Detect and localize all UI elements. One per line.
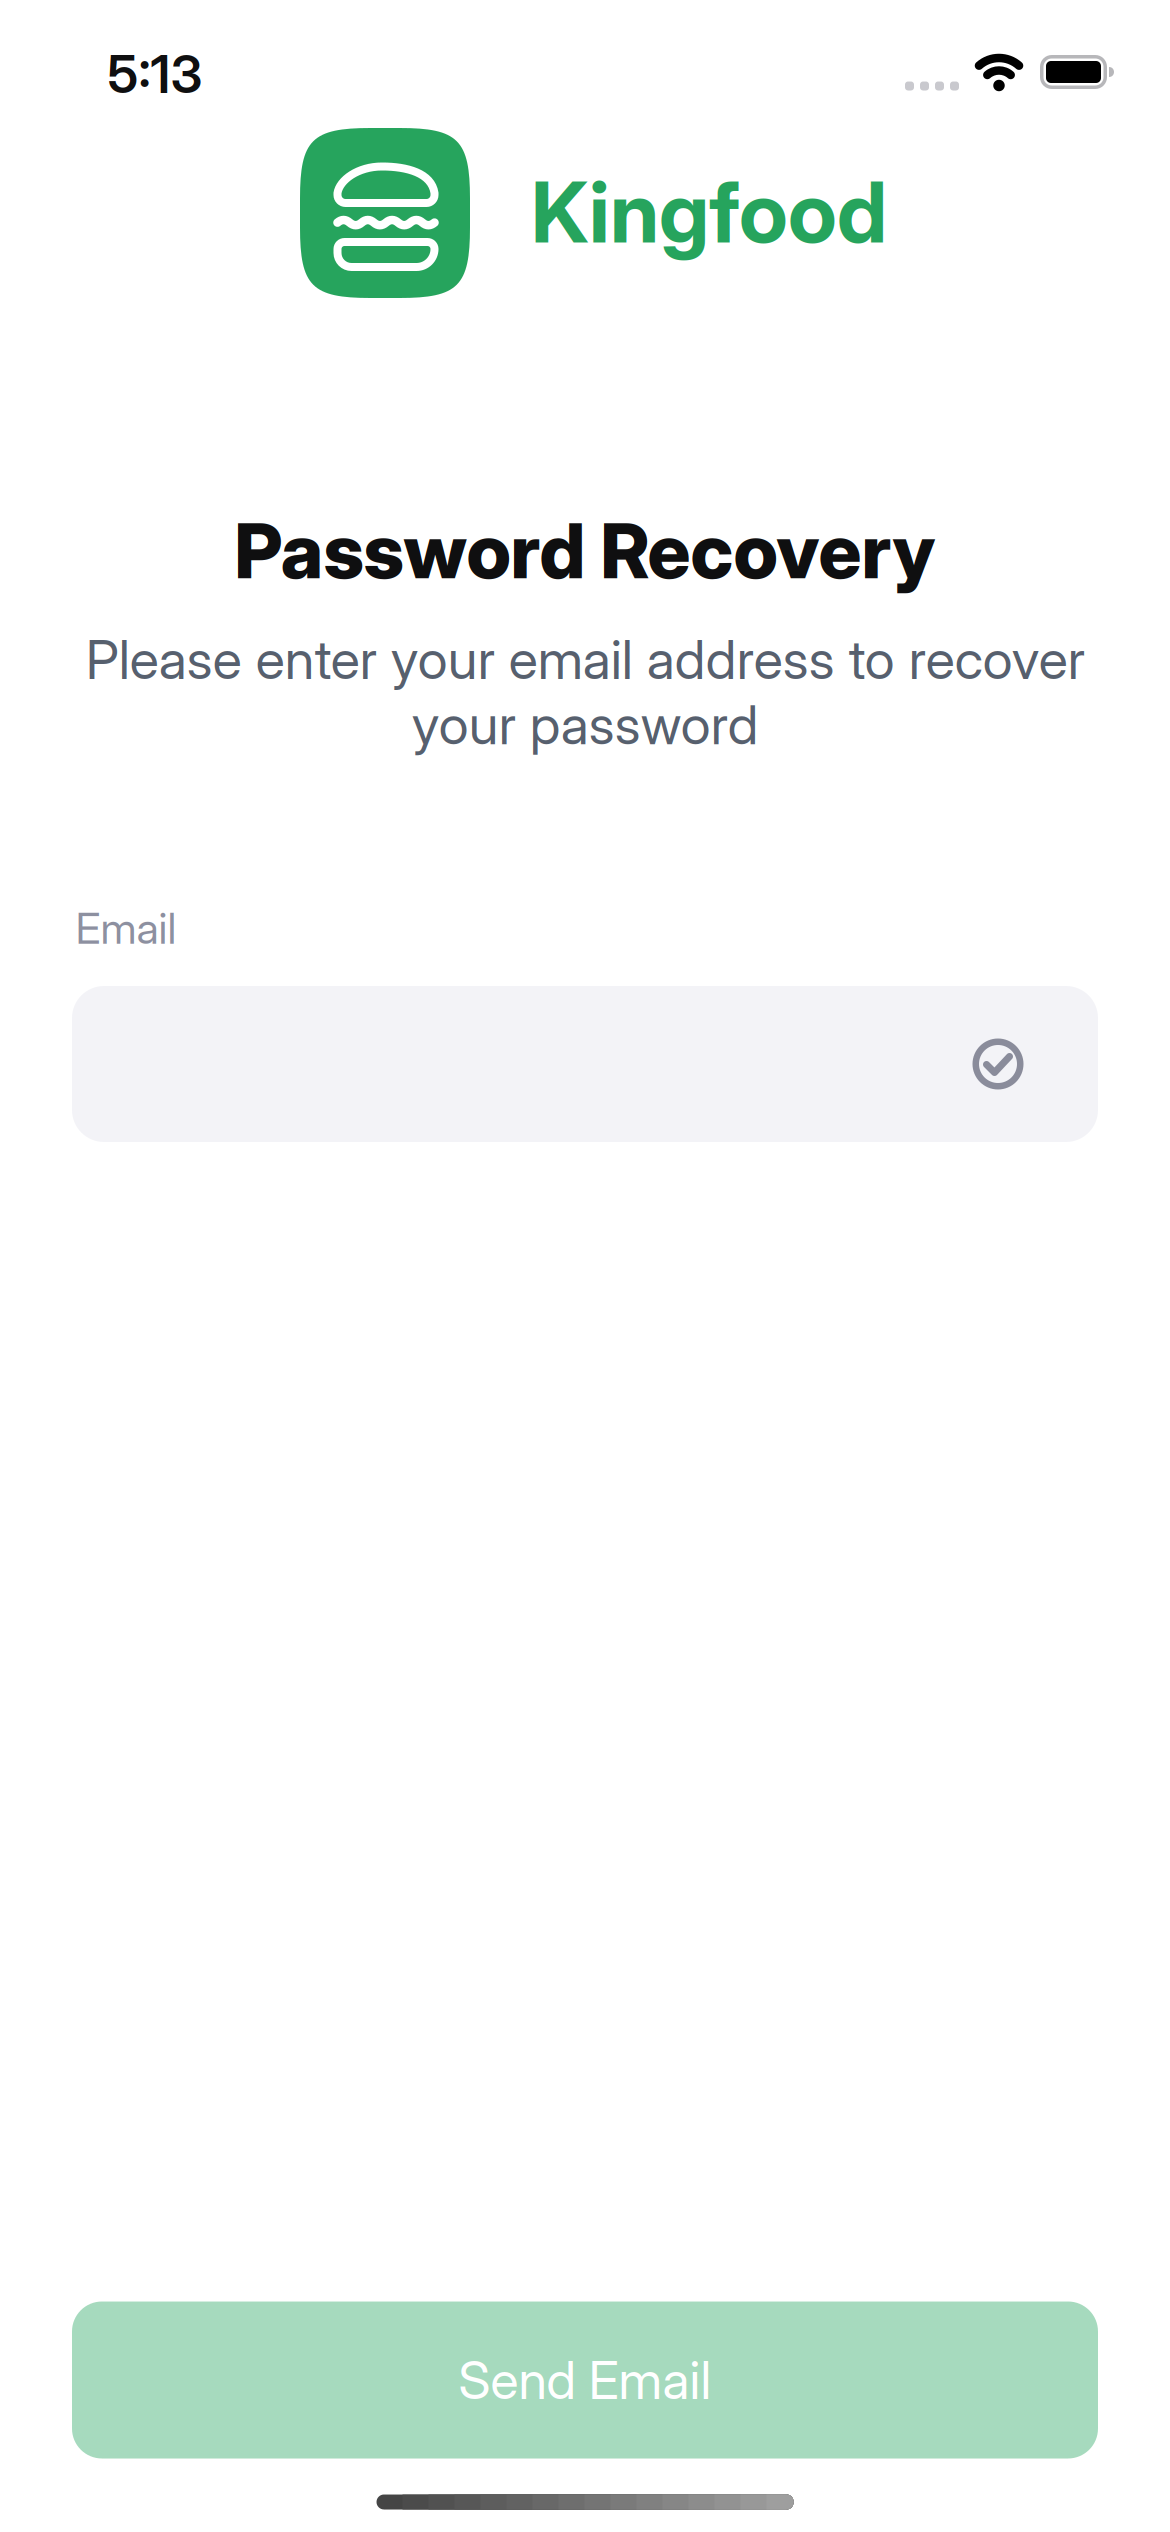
staticText: 5:13 <box>107 42 202 105</box>
staticText: Please enter your email address to recov… <box>85 627 1084 757</box>
staticText: Kingfood <box>531 161 887 263</box>
staticText: Email <box>75 902 176 954</box>
button[interactable]: Send Email <box>72 2301 1098 2458</box>
button[interactable]: Email <box>72 986 1098 1142</box>
staticText: Send Email <box>458 2348 711 2411</box>
staticText: Password Recovery <box>234 506 935 596</box>
